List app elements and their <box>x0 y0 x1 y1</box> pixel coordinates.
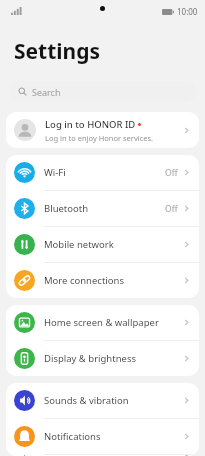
staticText: Search <box>32 86 61 98</box>
button[interactable]: Mobile network <box>6 227 199 262</box>
other: Open <box>182 432 191 441</box>
button[interactable]: Home screen and wallpaper <box>6 305 199 340</box>
staticText: Settings <box>14 37 101 66</box>
staticText: Bluetooth <box>44 202 165 215</box>
staticText: Off <box>165 203 178 215</box>
other: More connections <box>14 270 35 291</box>
other: Open <box>182 354 191 363</box>
staticText: Sounds & vibration <box>44 394 182 407</box>
other: Mobile network <box>14 234 35 255</box>
staticText: Display & brightness <box>44 352 182 365</box>
button[interactable]: Display and brightness <box>6 341 199 376</box>
staticText: More connections <box>44 274 182 287</box>
staticText: Log in to enjoy Honor services. <box>45 133 154 143</box>
other: Wi-Fi <box>14 162 35 183</box>
staticText: Notifications <box>44 430 182 443</box>
staticText: Off <box>165 167 178 179</box>
button[interactable]: Log in to HONOR ID <box>6 112 199 148</box>
staticText: 10:00 <box>177 6 198 17</box>
other: Open <box>182 204 191 213</box>
button[interactable]: More connections <box>6 263 199 298</box>
other: Open <box>182 318 191 327</box>
button[interactable]: Notifications <box>6 419 199 454</box>
button[interactable]: Bluetooth <box>6 191 199 226</box>
other: Bluetooth <box>14 198 35 219</box>
button[interactable]: Wi-Fi <box>6 155 199 190</box>
other: Open <box>182 240 191 249</box>
staticText: Mobile network <box>44 238 182 251</box>
other: Open <box>182 455 191 456</box>
other: Display and brightness <box>14 348 35 369</box>
other: Open <box>182 396 191 405</box>
other: Home screen and wallpaper <box>14 312 35 333</box>
other: Open <box>182 168 191 177</box>
other: Notifications <box>14 426 35 447</box>
other: Sounds and vibration <box>14 390 35 411</box>
other: Open <box>182 276 191 285</box>
button[interactable]: Sounds and vibration <box>6 383 199 418</box>
staticText: Log in to HONOR ID <box>45 118 136 131</box>
other: Apps <box>14 455 35 456</box>
staticText: Home screen & wallpaper <box>44 316 182 329</box>
button[interactable]: Apps <box>6 455 199 456</box>
staticText: Wi-Fi <box>44 166 165 179</box>
button[interactable]: Search <box>9 81 196 102</box>
other: Open <box>182 126 191 135</box>
